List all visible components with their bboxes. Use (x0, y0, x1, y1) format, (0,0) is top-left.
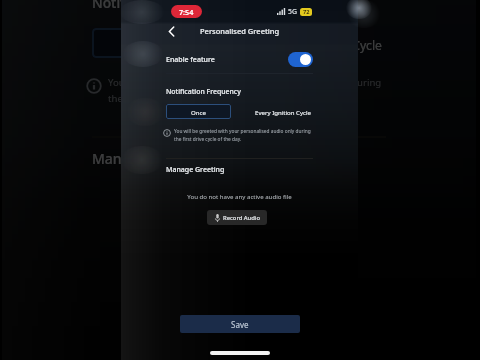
button[interactable]: Save (180, 315, 300, 333)
staticText: Every Ignition Cycle (255, 108, 311, 116)
staticText: Manage Greeting (92, 150, 210, 170)
staticText: Once (191, 108, 206, 116)
staticText: Enable feature (166, 55, 215, 65)
staticText: You will be greeted with your personalis… (108, 76, 386, 104)
staticText: You do not have any active audio file (187, 192, 292, 200)
staticText: You will be greeted with your personalis… (174, 128, 313, 142)
staticText: 72 (303, 8, 310, 16)
button[interactable]: Every Ignition Cycle (248, 28, 402, 58)
button[interactable]: Enable feature (121, 50, 358, 69)
button[interactable]: Record Audio (207, 210, 267, 225)
button[interactable]: Once (166, 104, 231, 119)
staticText: Personalised Greeting (200, 26, 280, 36)
staticText: 7:54 (179, 7, 194, 17)
staticText: Manage Greeting (166, 165, 225, 175)
button[interactable]: Every Ignition Cycle (244, 104, 321, 119)
button[interactable]: Once (92, 28, 222, 58)
staticText: 5G (288, 7, 297, 16)
staticText: You do not have any active audio file (134, 204, 344, 220)
staticText: Notification Frequency (166, 87, 241, 96)
staticText: Save (231, 319, 249, 330)
staticText: Notification Frequency (92, 0, 242, 12)
button[interactable]: Back (163, 23, 179, 39)
staticText: Record Audio (223, 214, 260, 222)
staticText: Every Ignition Cycle (270, 36, 382, 52)
staticText: Once (142, 36, 172, 52)
